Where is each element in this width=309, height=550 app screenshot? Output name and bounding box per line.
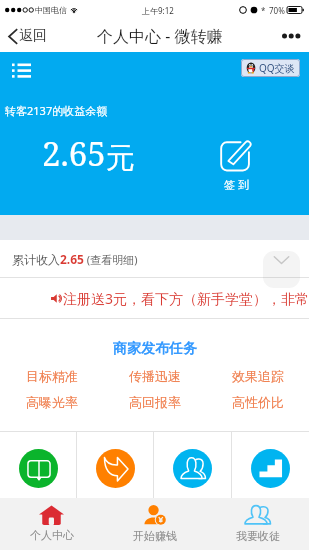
staticText: * — [261, 5, 266, 16]
button[interactable]: QQ交谈 — [241, 59, 300, 77]
button[interactable]: 高曝光率 — [0, 394, 103, 410]
staticText: 中国电信 — [35, 5, 67, 15]
staticText: 商家发布任务 — [113, 340, 197, 358]
button[interactable]: 个人中心 — [0, 498, 103, 550]
staticText: 个人中心 — [30, 528, 74, 542]
staticText: 开始赚钱 — [133, 529, 177, 543]
staticText: 元 — [106, 140, 135, 177]
staticText: QQ交谈 — [259, 61, 295, 75]
staticText: 70% — [269, 5, 285, 16]
staticText: 高曝光率 — [26, 394, 78, 410]
staticText: 转客2137的收益余额 — [5, 103, 108, 118]
button[interactable]: 开始赚钱 — [103, 498, 206, 550]
button[interactable]: 新手学堂 — [0, 432, 76, 498]
staticText: 2.65 — [42, 131, 106, 176]
button[interactable]: 返回 — [6, 23, 49, 49]
button[interactable]: 累计收入 — [0, 247, 146, 271]
staticText: 高回报率 — [129, 394, 181, 410]
staticText: 2.65 — [60, 251, 84, 267]
button[interactable]: 传播迅速 — [103, 368, 206, 384]
button[interactable]: 我要收徒 — [206, 498, 309, 550]
staticText: 目标精准 — [26, 368, 78, 384]
staticText: 我要收徒 — [236, 529, 280, 543]
staticText: 注册送3元，看下方（新手学堂），非常重要 — [63, 289, 309, 308]
button[interactable]: 目标精准 — [0, 368, 103, 384]
button[interactable]: 效果追踪 — [206, 368, 309, 384]
button[interactable]: Scroll down — [263, 251, 300, 288]
staticText: 高性价比 — [232, 394, 284, 410]
button[interactable]: 签 到 — [207, 137, 265, 192]
button[interactable]: 转发赚钱 — [77, 432, 153, 498]
staticText: 个人中心 - 微转赚 — [97, 25, 223, 47]
staticText: (查看明细) — [84, 252, 138, 267]
button[interactable]: Menu — [10, 61, 33, 80]
button[interactable]: 排行榜 — [232, 432, 309, 498]
staticText: 签 到 — [224, 177, 249, 192]
button[interactable]: 高性价比 — [206, 394, 309, 410]
staticText: 累计收入 — [12, 252, 60, 267]
staticText: 返回 — [19, 27, 47, 45]
staticText: 上午9:12 — [142, 5, 174, 16]
button[interactable]: More options — [272, 25, 309, 47]
staticText: 效果追踪 — [232, 368, 284, 384]
button[interactable]: 我的徒弟 — [154, 432, 231, 498]
staticText: 传播迅速 — [129, 368, 181, 384]
button[interactable]: 注册送3元，看下方（新手学堂），非常重要 — [0, 278, 309, 318]
button[interactable]: 高回报率 — [103, 394, 206, 410]
